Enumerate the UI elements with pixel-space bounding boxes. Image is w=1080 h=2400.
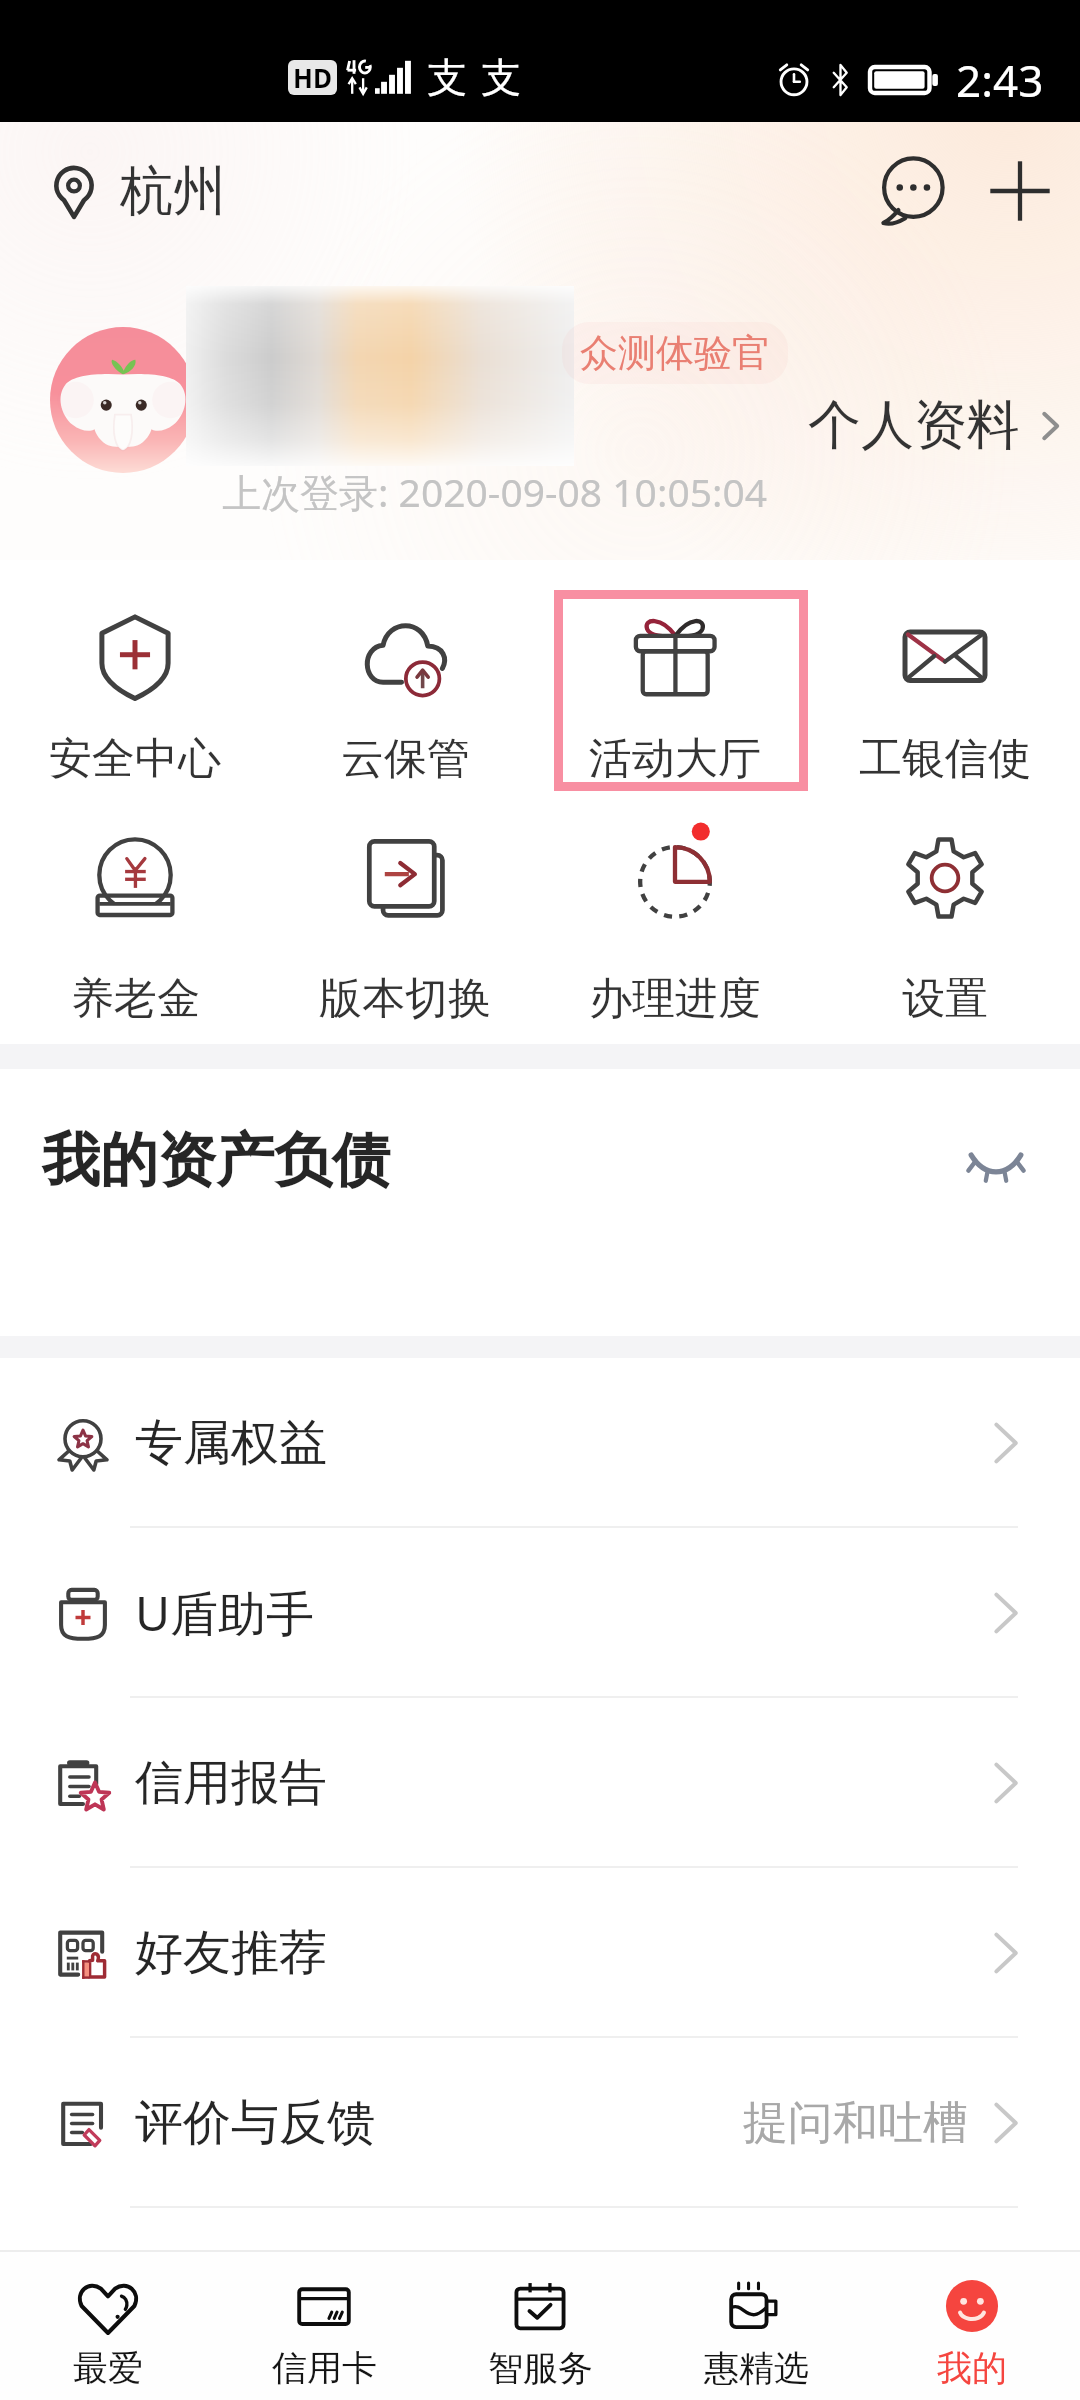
button[interactable]: Add (976, 147, 1064, 235)
button[interactable]: 智服务 (432, 2252, 648, 2400)
staticText: 智服务 (488, 2346, 593, 2390)
staticText: 个人资料 (808, 392, 1020, 459)
staticText: 养老金 (71, 972, 200, 1026)
button[interactable]: 云保管 (270, 560, 540, 802)
staticText: 支 (481, 52, 521, 102)
button[interactable]: 最爱 (0, 2252, 216, 2400)
staticText: 评价与反馈 (135, 2093, 375, 2153)
staticText: 最爱 (73, 2346, 143, 2390)
staticText: 办理进度 (589, 972, 761, 1026)
staticText: 云保管 (341, 732, 470, 786)
button[interactable]: 好友推荐 (0, 1868, 1080, 2038)
staticText: 信用卡 (272, 2346, 377, 2390)
button[interactable]: 设置 (810, 802, 1080, 1044)
staticText: 众测体验官 (580, 329, 770, 377)
button[interactable]: 评价与反馈 (0, 2038, 1080, 2208)
button[interactable]: 信用报告 (0, 1698, 1080, 1868)
button[interactable]: 专属权益 (0, 1358, 1080, 1528)
button[interactable]: 杭州 (46, 158, 226, 225)
staticText: 2:43 (956, 50, 1044, 110)
staticText: 版本切换 (319, 972, 491, 1026)
staticText: 我的 (937, 2346, 1007, 2390)
button[interactable]: 个人资料 (798, 384, 1078, 467)
button[interactable]: 活动大厅 (540, 560, 810, 802)
button[interactable]: U盾助手 (0, 1528, 1080, 1698)
staticText: U盾助手 (135, 1580, 315, 1646)
staticText: 支 (427, 52, 467, 102)
staticText: 好友推荐 (135, 1923, 327, 1983)
staticText: 提问和吐槽 (743, 2095, 968, 2152)
staticText: 上次登录: 2020-09-08 10:05:04 (222, 465, 768, 518)
staticText: 专属权益 (135, 1413, 327, 1473)
button[interactable]: 版本切换 (270, 802, 540, 1044)
button[interactable]: 工银信使 (810, 560, 1080, 802)
staticText: 杭州 (120, 158, 226, 225)
staticText: 设置 (902, 972, 988, 1026)
button[interactable]: Messages (868, 147, 956, 235)
button[interactable]: 信用卡 (216, 2252, 432, 2400)
button[interactable]: 惠精选 (648, 2252, 864, 2400)
button[interactable]: 安全中心 (0, 560, 270, 802)
staticText: 惠精选 (704, 2346, 809, 2390)
button[interactable]: 办理进度 (540, 802, 810, 1044)
staticText: 活动大厅 (589, 732, 761, 786)
button[interactable]: 养老金 (0, 802, 270, 1044)
button[interactable]: Hide amounts (960, 1124, 1032, 1196)
staticText: 安全中心 (49, 732, 221, 786)
button[interactable]: 我的 (864, 2252, 1080, 2400)
staticText: 我的资产负债 (42, 1124, 390, 1197)
staticText: 工银信使 (859, 732, 1031, 786)
staticText: HD (293, 60, 332, 95)
staticText: 信用报告 (135, 1753, 327, 1813)
